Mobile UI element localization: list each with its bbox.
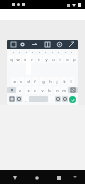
staticText: h [49,79,52,84]
button[interactable]: Emoji [55,96,61,102]
button[interactable]: c [32,86,38,94]
button[interactable]: g [40,77,46,85]
staticText: v [41,88,44,93]
staticText: , [25,97,27,102]
staticText: i [59,57,61,62]
button[interactable]: z [17,86,23,94]
button[interactable]: f [32,77,38,85]
button[interactable]: h [47,77,53,85]
button[interactable]: Backspace [68,87,78,93]
staticText: n [56,88,59,93]
button[interactable]: t [36,55,42,63]
button[interactable]: Shift [7,87,16,93]
button[interactable]: Settings [19,41,26,48]
button[interactable]: Keyboard [72,174,78,180]
staticText: w [16,57,20,62]
staticText: o [66,57,69,62]
button[interactable]: Language [16,96,22,102]
staticText: e [24,57,27,62]
staticText: t [38,57,40,62]
button[interactable]: Home [32,173,41,182]
button[interactable]: Next [31,41,38,48]
staticText: x [27,88,30,93]
button[interactable]: o [64,55,70,63]
button[interactable]: r [29,55,35,63]
button[interactable]: Theme [56,41,63,48]
button[interactable]: d [25,77,31,85]
button[interactable]: s [18,77,24,85]
button[interactable]: j [54,77,60,85]
button[interactable]: a [11,77,17,85]
button[interactable]: w [15,55,21,63]
staticText: c [34,88,36,93]
button[interactable]: n [54,86,60,94]
staticText: a [13,79,16,84]
staticText: m [62,88,66,93]
button[interactable]: u [50,55,56,63]
staticText: z [19,88,21,93]
button[interactable]: Symbols [9,96,15,102]
staticText: . [51,97,53,102]
button[interactable]: e [22,55,28,63]
button[interactable]: . [49,96,54,102]
staticText: q [10,57,13,62]
staticText: j [56,79,58,84]
button[interactable]: Enter [69,96,76,103]
button[interactable]: p [71,55,77,63]
button[interactable]: k [61,77,67,85]
staticText: f [34,79,36,84]
staticText: s [20,79,22,84]
button[interactable]: i [57,55,63,63]
staticText: p [73,57,76,62]
button[interactable]: b [46,86,52,94]
staticText: d [27,79,30,84]
staticText: b [48,88,51,93]
button[interactable]: Emoji [10,41,17,48]
button[interactable]: x [25,86,31,94]
staticText: k [63,79,66,84]
button[interactable]: q [8,55,14,63]
staticText: r [31,57,33,62]
staticText: l [70,79,72,84]
button[interactable]: v [39,86,45,94]
staticText: y [45,57,48,62]
button[interactable]: Clipboard [44,41,51,48]
button[interactable]: m [61,86,67,94]
button[interactable]: Expand [68,41,75,48]
button[interactable]: y [43,55,49,63]
button[interactable]: Voice [62,96,68,102]
staticText: u [52,57,55,62]
button[interactable]: , [23,96,28,102]
staticText: g [42,79,45,84]
button[interactable]: Recents [54,173,63,182]
button[interactable]: Back [10,173,19,182]
button[interactable]: l [68,77,74,85]
